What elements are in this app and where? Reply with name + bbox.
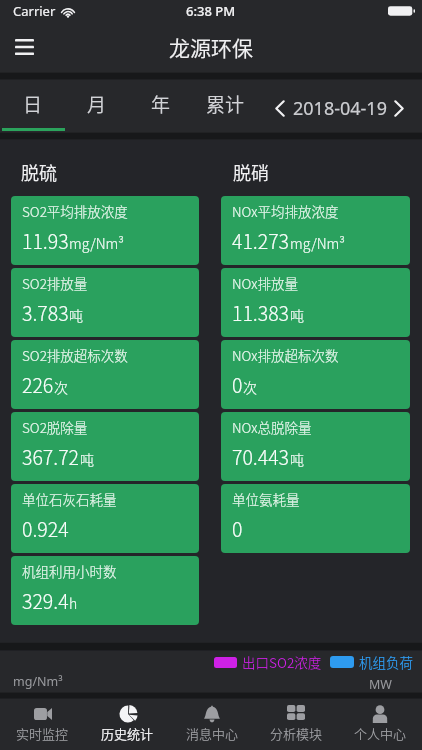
staticText: 日 (23, 90, 43, 118)
button[interactable]: 实时监控 (0, 699, 85, 750)
staticText: 机组负荷 (359, 652, 413, 672)
staticText: 个人中心 (354, 724, 407, 743)
button[interactable]: 单位石灰石耗量 (11, 484, 199, 553)
button[interactable]: NOx总脱除量 (221, 412, 410, 481)
staticText: 11.383 (232, 298, 290, 326)
staticText: 367.72 (22, 442, 80, 470)
staticText: 单位石灰石耗量 (22, 489, 117, 509)
button[interactable]: 累计 (193, 80, 258, 132)
staticText: 3.783 (22, 298, 69, 326)
staticText: 单位氨耗量 (232, 489, 300, 509)
staticText: 出口SO2浓度 (242, 652, 322, 672)
staticText: mg/Nm³ (69, 233, 124, 253)
button[interactable]: NOx平均排放浓度 (221, 196, 410, 265)
staticText: 226 (22, 370, 54, 398)
staticText: NOx平均排放浓度 (232, 201, 339, 221)
button[interactable]: 消息中心 (170, 699, 254, 750)
staticText: 11.93 (22, 226, 69, 254)
button[interactable]: 单位氨耗量 (221, 484, 410, 553)
button[interactable]: 月 (65, 80, 129, 132)
staticText: 0 (232, 514, 243, 542)
staticText: 分析模块 (270, 724, 323, 743)
staticText: 月 (87, 90, 107, 118)
staticText: 41.273 (232, 226, 290, 254)
staticText: 吨 (290, 449, 304, 469)
staticText: 脱硫 (21, 159, 57, 185)
staticText: 实时监控 (16, 724, 69, 743)
staticText: SO2排放超标次数 (22, 345, 128, 365)
button[interactable]: SO2排放量 (11, 268, 199, 337)
staticText: 脱硝 (233, 159, 269, 185)
button[interactable]: SO2脱除量 (11, 412, 199, 481)
staticText: 消息中心 (186, 724, 239, 743)
staticText: 6:38 PM (186, 2, 236, 20)
staticText: 累计 (206, 90, 245, 118)
button[interactable]: Next day (387, 91, 411, 125)
button[interactable]: 日 (0, 80, 65, 132)
staticText: mg/Nm³ (13, 673, 63, 690)
staticText: SO2脱除量 (22, 417, 88, 437)
button[interactable]: 历史统计 (85, 699, 170, 750)
staticText: MW (369, 676, 392, 693)
staticText: SO2排放量 (22, 273, 88, 293)
staticText: 机组利用小时数 (22, 561, 117, 581)
staticText: 70.443 (232, 442, 290, 470)
staticText: mg/Nm³ (290, 233, 345, 253)
button[interactable]: NOx排放超标次数 (221, 340, 410, 409)
staticText: 年 (151, 90, 171, 118)
staticText: 次 (243, 377, 257, 397)
staticText: NOx排放超标次数 (232, 345, 339, 365)
staticText: 龙源环保 (169, 32, 253, 62)
staticText: h (69, 593, 78, 613)
staticText: 0.924 (22, 514, 69, 542)
staticText: Carrier (13, 2, 56, 20)
button[interactable]: 机组利用小时数 (11, 556, 199, 625)
button[interactable]: SO2平均排放浓度 (11, 196, 199, 265)
button[interactable]: 分析模块 (254, 699, 338, 750)
staticText: 吨 (290, 305, 304, 325)
staticText: NOx排放量 (232, 273, 298, 293)
staticText: 吨 (80, 449, 94, 469)
staticText: NOx总脱除量 (232, 417, 312, 437)
button[interactable]: Menu (0, 22, 48, 72)
button[interactable]: 个人中心 (338, 699, 422, 750)
button[interactable]: NOx排放量 (221, 268, 410, 337)
staticText: 次 (54, 377, 68, 397)
button[interactable]: 年 (129, 80, 193, 132)
button[interactable]: SO2排放超标次数 (11, 340, 199, 409)
staticText: 0 (232, 370, 243, 398)
staticText: 历史统计 (101, 724, 154, 743)
button[interactable]: Previous day (267, 91, 293, 125)
staticText: 吨 (69, 305, 83, 325)
staticText: 329.4 (22, 586, 69, 614)
staticText: SO2平均排放浓度 (22, 201, 128, 221)
staticText: 2018-04-19 (293, 96, 387, 121)
